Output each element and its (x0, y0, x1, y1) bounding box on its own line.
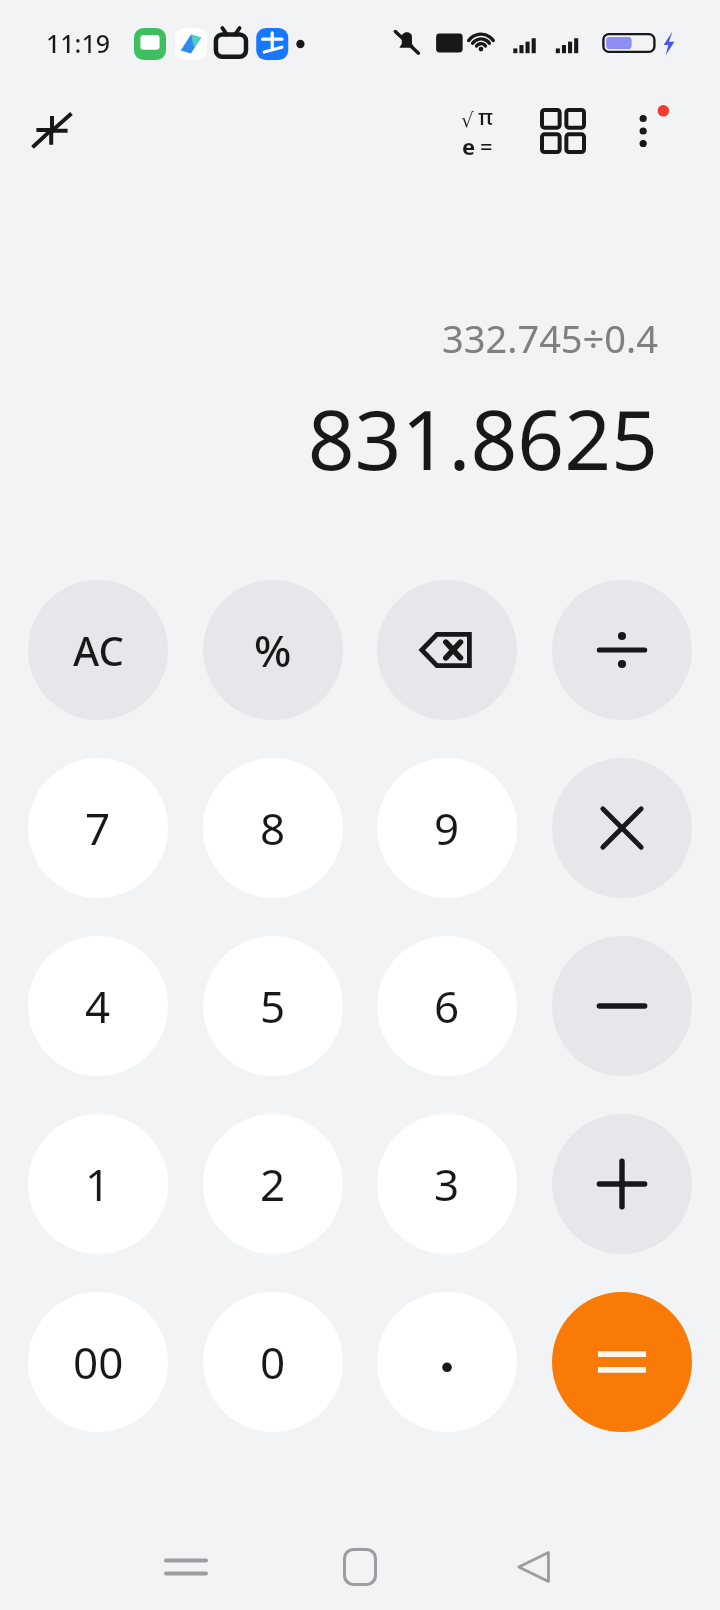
button[interactable]: Two (203, 1114, 343, 1254)
button[interactable]: Four (28, 936, 168, 1076)
button[interactable]: One (28, 1114, 168, 1254)
staticText: 4 (85, 976, 111, 1036)
staticText: 5 (260, 976, 286, 1036)
staticText: 1 (85, 1154, 111, 1214)
button[interactable]: Recent apps (99, 1524, 273, 1610)
staticText: 00 (73, 1332, 124, 1392)
staticText: √ (461, 108, 474, 131)
staticText: 831.8625 (307, 382, 658, 494)
staticText: 0 (260, 1332, 286, 1392)
button[interactable]: Divide (552, 580, 692, 720)
staticText: 2 (260, 1154, 286, 1214)
button[interactable]: Seven (28, 758, 168, 898)
staticText: 332.745÷0.4 (442, 312, 658, 364)
staticText: AC (73, 623, 124, 677)
button[interactable]: Zero (203, 1292, 343, 1432)
staticText: 7 (85, 798, 111, 858)
button[interactable]: Percent (203, 580, 343, 720)
button[interactable]: Decimal point (377, 1292, 517, 1432)
button[interactable]: Scientific mode (438, 92, 516, 170)
button[interactable]: Nine (377, 758, 517, 898)
staticText: 8 (260, 798, 286, 858)
button[interactable]: Six (377, 936, 517, 1076)
staticText: 9 (434, 798, 460, 858)
button[interactable]: Multiply (552, 758, 692, 898)
staticText: % (254, 620, 292, 680)
button[interactable]: Double zero (28, 1292, 168, 1432)
button[interactable]: Plus (552, 1114, 692, 1254)
staticText: 3 (434, 1154, 460, 1214)
button[interactable]: Eight (203, 758, 343, 898)
button[interactable]: Equals (552, 1292, 692, 1432)
staticText: 6 (434, 976, 460, 1036)
staticText: e (462, 131, 476, 161)
button[interactable]: More options (608, 92, 686, 170)
button[interactable]: Backspace (377, 580, 517, 720)
staticText: π (478, 101, 493, 131)
button[interactable]: Home (273, 1524, 447, 1610)
button[interactable]: History (524, 92, 602, 170)
button[interactable]: Back (447, 1524, 621, 1610)
button[interactable]: Minus (552, 936, 692, 1076)
button[interactable]: Three (377, 1114, 517, 1254)
button[interactable]: Five (203, 936, 343, 1076)
staticText: 11:19 (46, 26, 111, 60)
button[interactable]: All clear (28, 580, 168, 720)
button[interactable]: Collapse (16, 94, 88, 166)
staticText: = (480, 131, 493, 161)
